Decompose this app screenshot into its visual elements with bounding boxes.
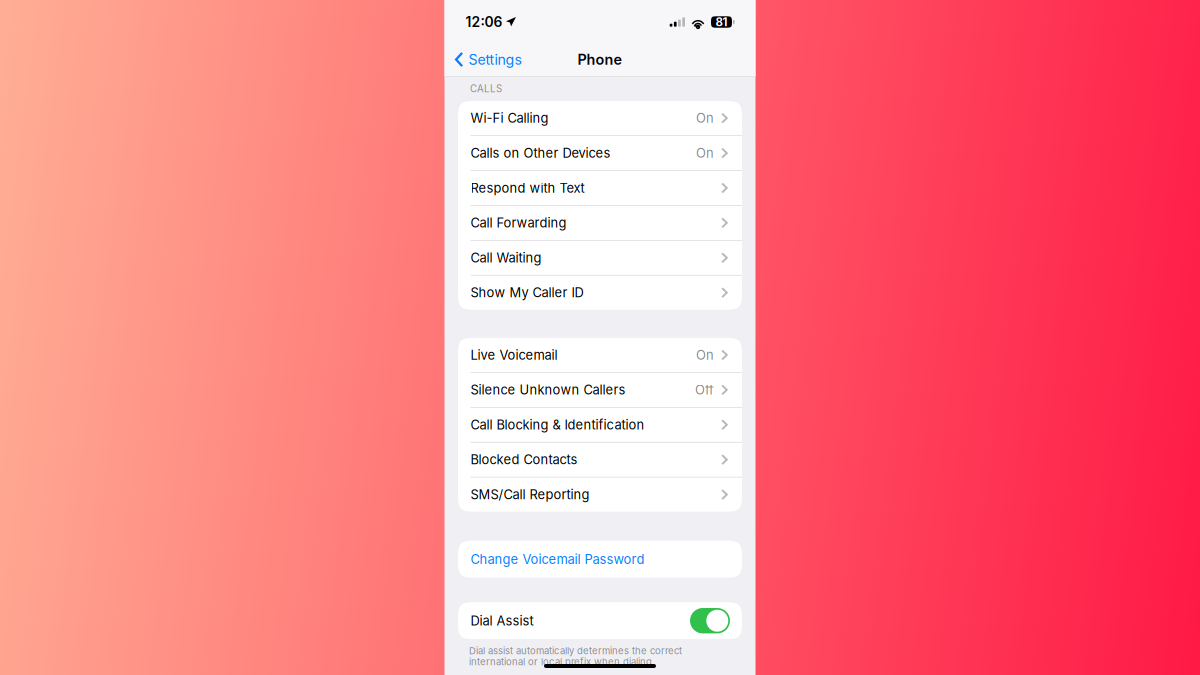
staticText: Call Waiting bbox=[470, 250, 541, 265]
staticText: On bbox=[696, 145, 714, 161]
button[interactable]: Call Forwarding bbox=[458, 206, 742, 240]
staticText: 81 bbox=[715, 15, 727, 29]
button[interactable]: Respond with Text bbox=[458, 171, 742, 205]
button[interactable]: Call Waiting bbox=[458, 241, 742, 275]
button[interactable]: Call Blocking & Identification bbox=[458, 408, 742, 442]
staticText: Respond with Text bbox=[470, 180, 584, 196]
staticText: Dial Assist bbox=[470, 613, 533, 628]
staticText: Call Forwarding bbox=[470, 215, 566, 230]
button[interactable]: Silence Unknown Callers bbox=[458, 373, 742, 407]
button[interactable]: Dial Assist bbox=[690, 608, 730, 633]
button[interactable]: Calls on Other Devices bbox=[458, 136, 742, 170]
staticText: Live Voicemail bbox=[470, 347, 557, 363]
button[interactable]: Live Voicemail bbox=[458, 338, 742, 372]
staticText: Change Voicemail Password bbox=[470, 552, 644, 567]
staticText: 12:06 bbox=[465, 14, 502, 30]
staticText: international or local prefix when diali… bbox=[469, 656, 655, 667]
button[interactable]: SMS/Call Reporting bbox=[458, 477, 742, 512]
staticText: Phone bbox=[577, 51, 622, 68]
staticText: Call Blocking & Identification bbox=[470, 417, 644, 432]
staticText: Calls on Other Devices bbox=[470, 145, 610, 161]
staticText: Wi-Fi Calling bbox=[470, 110, 548, 126]
button[interactable]: Wi-Fi Calling bbox=[458, 101, 742, 135]
staticText: Silence Unknown Callers bbox=[470, 382, 625, 397]
staticText: CALLS bbox=[470, 83, 502, 95]
staticText: Show My Caller ID bbox=[470, 285, 583, 300]
staticText: Settings bbox=[468, 51, 521, 68]
staticText: Dial assist automatically determines the… bbox=[469, 645, 682, 656]
staticText: SMS/Call Reporting bbox=[470, 487, 589, 502]
button[interactable]: Blocked Contacts bbox=[458, 442, 742, 477]
staticText: On bbox=[696, 347, 714, 363]
button[interactable]: Change Voicemail Password bbox=[458, 541, 742, 578]
staticText: Off bbox=[695, 382, 714, 397]
button[interactable]: Show My Caller ID bbox=[458, 275, 742, 310]
button[interactable]: Settings bbox=[444, 42, 531, 76]
staticText: Blocked Contacts bbox=[470, 452, 577, 467]
staticText: On bbox=[696, 110, 714, 126]
